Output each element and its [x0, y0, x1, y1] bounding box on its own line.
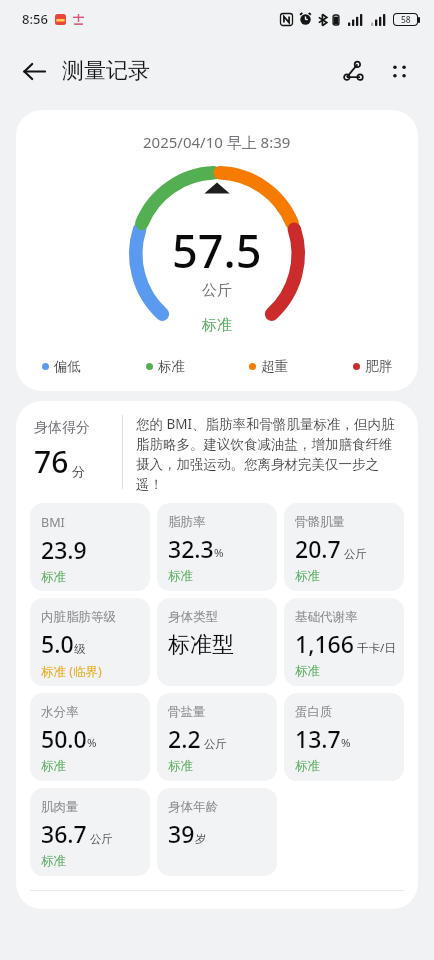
- staticText: 身体类型: [168, 609, 218, 625]
- button[interactable]: Share: [332, 50, 374, 92]
- staticText: 标准: [168, 568, 193, 584]
- staticText: 标准: [295, 568, 320, 584]
- staticText: 57.5: [172, 220, 262, 281]
- staticText: 58: [401, 14, 411, 25]
- button[interactable]: 蛋白质: [284, 693, 404, 781]
- staticText: 标准: [41, 758, 66, 774]
- staticText: 2.2: [168, 723, 201, 754]
- staticText: 32.3: [168, 533, 214, 564]
- staticText: 1,166: [295, 628, 354, 659]
- button[interactable]: 内脏脂肪等级: [30, 598, 150, 686]
- staticText: 标准: [41, 569, 66, 585]
- staticText: 标准: [202, 316, 232, 335]
- staticText: 超重: [261, 358, 288, 375]
- staticText: 岁: [195, 832, 207, 846]
- staticText: 标准: [41, 853, 66, 869]
- staticText: 脂肪率: [168, 514, 206, 530]
- button[interactable]: Back: [14, 51, 54, 91]
- staticText: BMI: [41, 514, 65, 531]
- staticText: 20.7: [295, 533, 341, 564]
- staticText: 标准: [168, 758, 193, 774]
- staticText: %: [87, 735, 97, 751]
- staticText: 2025/04/10 早上 8:39: [143, 132, 291, 152]
- staticText: 您的 BMI、脂肪率和骨骼肌量标准，但内脏脂肪略多。建议饮食减油盐，增加膳食纤维…: [136, 415, 402, 493]
- button[interactable]: 脂肪率: [157, 503, 277, 591]
- staticText: 肌肉量: [41, 799, 79, 815]
- button[interactable]: 肌肉量: [30, 788, 150, 876]
- button[interactable]: BMI: [30, 503, 150, 591]
- staticText: 76: [34, 441, 69, 482]
- staticText: 蛋白质: [295, 704, 333, 720]
- staticText: 千卡/日: [357, 640, 396, 656]
- staticText: 公斤: [90, 832, 113, 846]
- staticText: 标准: [295, 758, 320, 774]
- staticText: 50.0: [41, 723, 87, 754]
- staticText: 基础代谢率: [295, 609, 358, 625]
- staticText: %: [341, 735, 351, 751]
- button[interactable]: 身体年龄: [157, 788, 277, 876]
- staticText: 标准: [158, 358, 185, 375]
- staticText: 偏低: [54, 358, 81, 375]
- staticText: 骨骼肌量: [295, 514, 345, 530]
- button[interactable]: More options: [378, 50, 420, 92]
- button[interactable]: 骨盐量: [157, 693, 277, 781]
- staticText: 身体年龄: [168, 799, 218, 815]
- button[interactable]: 水分率: [30, 693, 150, 781]
- staticText: 标准 (临界): [41, 663, 102, 680]
- staticText: 级: [74, 642, 86, 656]
- staticText: 肥胖: [365, 358, 392, 375]
- staticText: 分: [72, 463, 85, 479]
- staticText: 39: [168, 818, 195, 849]
- staticText: 23.9: [41, 534, 87, 565]
- staticText: 水分率: [41, 704, 79, 720]
- staticText: 测量记录: [62, 57, 150, 85]
- staticText: 36.7: [41, 818, 87, 849]
- button[interactable]: 基础代谢率: [284, 598, 404, 686]
- staticText: 公斤: [204, 737, 227, 751]
- staticText: 标准: [295, 663, 320, 679]
- staticText: 身体得分: [34, 419, 90, 437]
- staticText: 8:56: [22, 10, 48, 28]
- staticText: 内脏脂肪等级: [41, 609, 116, 625]
- staticText: %: [214, 545, 224, 561]
- staticText: 公斤: [202, 281, 232, 300]
- staticText: 5.0: [41, 628, 74, 659]
- button[interactable]: 骨骼肌量: [284, 503, 404, 591]
- staticText: 公斤: [344, 547, 367, 561]
- staticText: 标准型: [168, 631, 234, 659]
- staticText: 13.7: [295, 723, 341, 754]
- button[interactable]: 身体类型: [157, 598, 277, 686]
- staticText: 骨盐量: [168, 704, 206, 720]
